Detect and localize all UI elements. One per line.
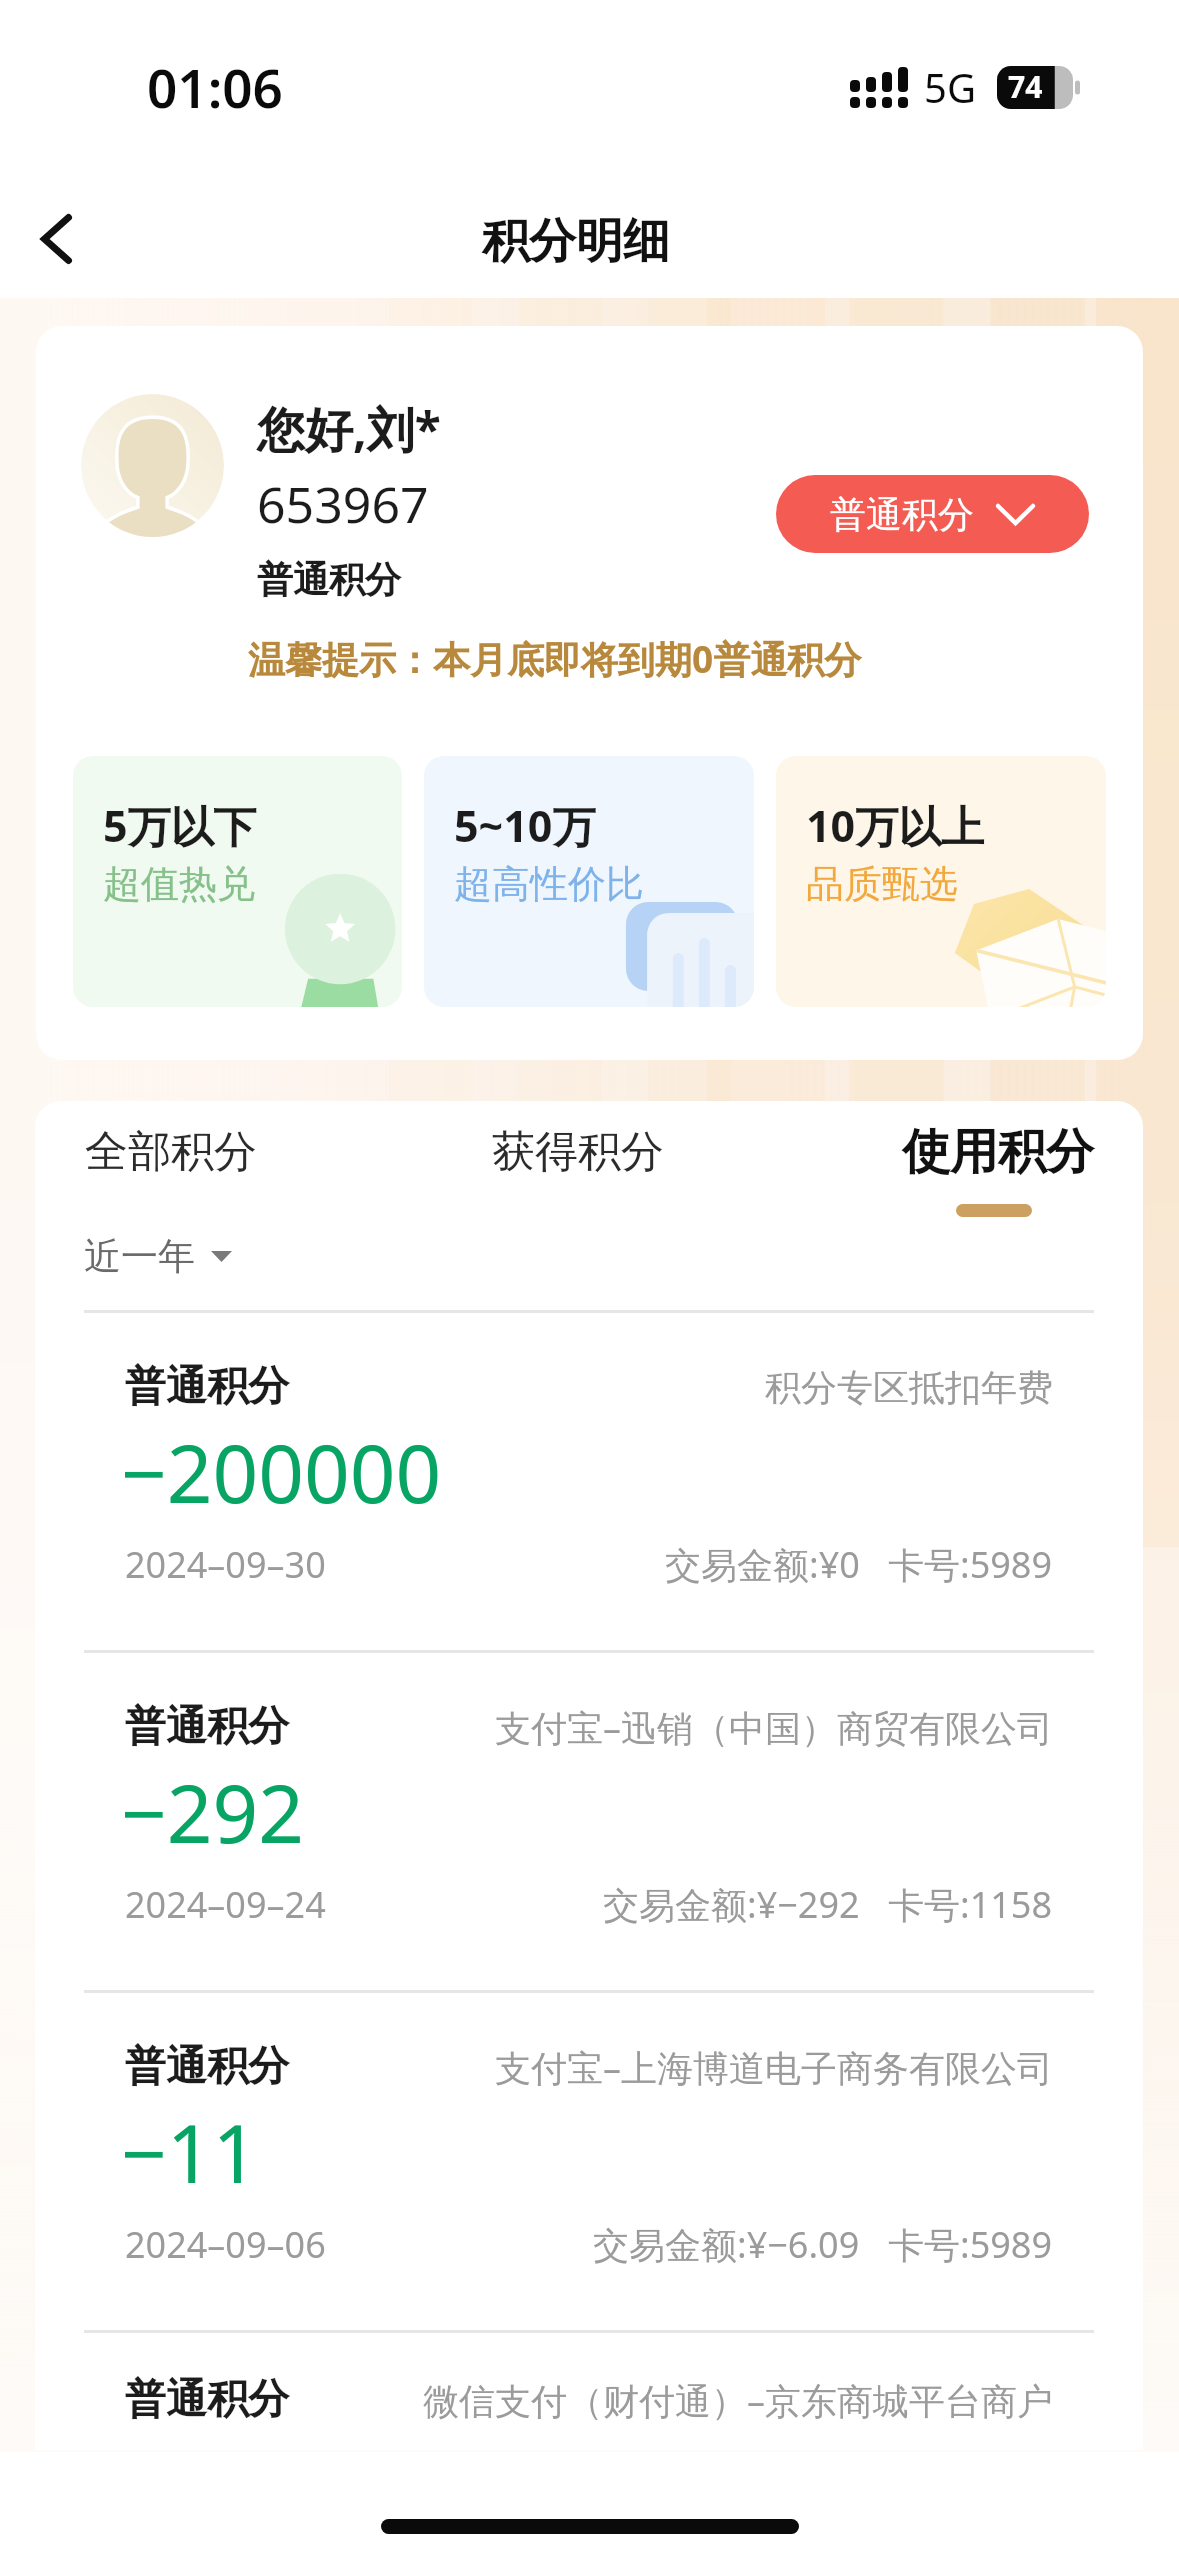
button[interactable]: Back bbox=[14, 197, 98, 281]
staticText: 支付宝–上海博道电子商务有限公司 bbox=[495, 2043, 1053, 2092]
staticText: 普通积分 bbox=[125, 2041, 289, 2093]
button[interactable]: 使用积分 bbox=[774, 1119, 1143, 1233]
staticText: 卡号:5989 bbox=[888, 2220, 1053, 2269]
staticText: 653967 bbox=[257, 470, 429, 538]
staticText: −200000 bbox=[121, 1417, 442, 1526]
button[interactable]: 5~10万 bbox=[424, 756, 754, 1007]
staticText: 支付宝–迅销（中国）商贸有限公司 bbox=[495, 1703, 1053, 1752]
staticText: 74 bbox=[1008, 66, 1043, 107]
staticText: 品质甄选 bbox=[806, 860, 958, 908]
staticText: 交易金额:¥−6.09 bbox=[593, 2220, 860, 2269]
staticText: 10万以上 bbox=[806, 796, 985, 855]
button[interactable]: 全部积分 bbox=[35, 1119, 405, 1233]
staticText: 温馨提示：本月底即将到期0普通积分 bbox=[248, 633, 862, 684]
staticText: −11 bbox=[121, 2097, 259, 2206]
button[interactable]: 普通积分 bbox=[776, 475, 1089, 553]
staticText: 使用积分 bbox=[902, 1122, 1094, 1182]
staticText: 积分明细 bbox=[482, 212, 670, 271]
staticText: 超值热兑 bbox=[103, 860, 255, 908]
button[interactable]: 获得积分 bbox=[405, 1119, 750, 1233]
staticText: 01:06 bbox=[147, 51, 283, 123]
staticText: 2024–09–30 bbox=[125, 1540, 326, 1589]
staticText: 积分专区抵扣年费 bbox=[765, 1365, 1053, 1410]
button[interactable]: 普通积分 bbox=[35, 1313, 1143, 1650]
staticText: 2024–09–24 bbox=[125, 1880, 326, 1929]
staticText: 普通积分 bbox=[125, 1701, 289, 1753]
staticText: 您好,刘* bbox=[257, 396, 441, 462]
staticText: 超高性价比 bbox=[454, 860, 644, 908]
button[interactable]: 普通积分 bbox=[35, 1993, 1143, 2330]
staticText: 交易金额:¥0 bbox=[665, 1540, 860, 1589]
staticText: 2024–09–06 bbox=[125, 2220, 326, 2269]
staticText: −292 bbox=[121, 1757, 305, 1866]
button[interactable]: 普通积分 bbox=[35, 2333, 1143, 2426]
staticText: 获得积分 bbox=[492, 1125, 664, 1179]
staticText: 近一年 bbox=[84, 1233, 195, 1280]
staticText: 普通积分 bbox=[125, 1361, 289, 1413]
button[interactable]: 5万以下 bbox=[73, 756, 402, 1007]
button[interactable]: 10万以上 bbox=[776, 756, 1106, 1007]
button[interactable]: 近一年 bbox=[84, 1233, 240, 1280]
staticText: 全部积分 bbox=[85, 1125, 257, 1179]
staticText: 普通积分 bbox=[257, 557, 401, 602]
staticText: 5G bbox=[924, 60, 976, 114]
staticText: 5~10万 bbox=[454, 796, 596, 855]
button[interactable]: 普通积分 bbox=[35, 1653, 1143, 1990]
staticText: 交易金额:¥−292 bbox=[603, 1880, 860, 1929]
staticText: 卡号:1158 bbox=[888, 1880, 1053, 1929]
staticText: 微信支付（财付通）–京东商城平台商户 bbox=[423, 2376, 1053, 2425]
staticText: 普通积分 bbox=[125, 2374, 289, 2426]
staticText: 普通积分 bbox=[830, 492, 974, 537]
staticText: 5万以下 bbox=[103, 796, 257, 855]
staticText: 卡号:5989 bbox=[888, 1540, 1053, 1589]
